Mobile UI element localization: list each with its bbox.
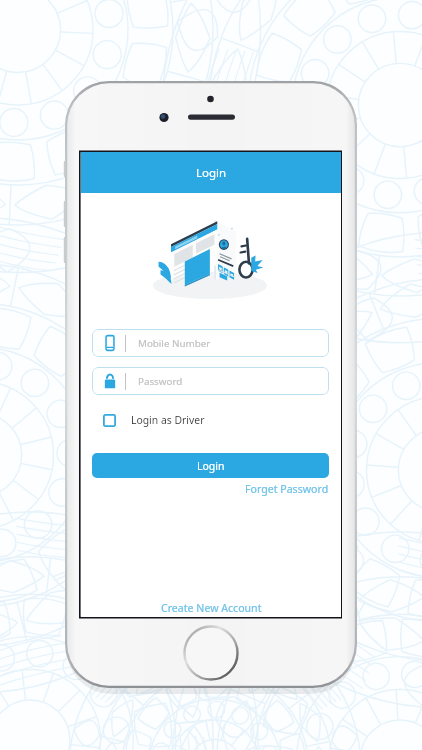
button[interactable]: Login [92, 453, 329, 478]
staticText: Mobile Number [138, 337, 211, 350]
button[interactable]: Password [92, 367, 329, 395]
other: Password [104, 373, 116, 389]
staticText: Login [196, 165, 227, 181]
button[interactable]: Login as Driver [103, 410, 205, 430]
button[interactable]: Login [81, 152, 341, 193]
staticText: Login as Driver [131, 413, 205, 427]
button[interactable]: Create New Account [161, 601, 262, 615]
other: Mobile number [104, 335, 116, 351]
button[interactable]: Mobile number [92, 329, 329, 357]
button[interactable]: Forget Password [245, 482, 329, 496]
staticText: Login [197, 459, 225, 473]
staticText: Password [138, 375, 183, 388]
